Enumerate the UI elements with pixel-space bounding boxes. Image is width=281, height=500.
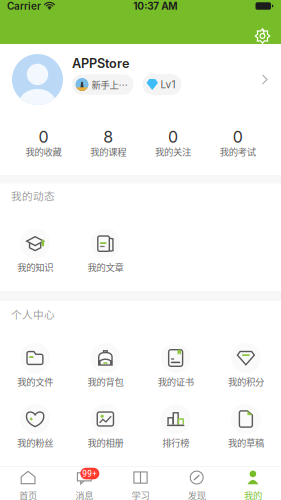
button[interactable]: 首页 — [0, 468, 56, 500]
button[interactable]: 8 — [76, 131, 141, 156]
staticText: 10:37 AM — [133, 0, 177, 12]
button[interactable]: 0 — [11, 131, 76, 156]
staticText: 我的课程 — [90, 145, 126, 158]
staticText: 消息 — [75, 488, 93, 500]
button[interactable]: 排行榜 — [140, 404, 211, 447]
staticText: 我的收藏 — [25, 145, 61, 158]
button[interactable]: APPStore — [0, 44, 281, 115]
button[interactable]: 我的证书 — [140, 343, 211, 386]
button[interactable]: 我的 — [225, 468, 281, 500]
staticText: 首页 — [19, 488, 37, 500]
button[interactable]: 0 — [205, 131, 270, 156]
button[interactable]: 我的知识 — [0, 228, 70, 271]
staticText: 0 — [38, 127, 48, 147]
button[interactable]: 我的草稿 — [211, 404, 281, 447]
staticText: 0 — [233, 127, 243, 147]
button[interactable]: 我的粉丝 — [0, 404, 70, 447]
button[interactable]: Settings — [251, 24, 274, 47]
staticText: 我的背包 — [87, 375, 123, 388]
staticText: 排行榜 — [162, 436, 189, 449]
staticText: 8 — [103, 127, 113, 147]
button[interactable]: 我的积分 — [211, 343, 281, 386]
staticText: 我的考试 — [220, 145, 256, 158]
button[interactable]: 我的文件 — [0, 343, 70, 386]
staticText: 发现 — [188, 488, 206, 500]
staticText: 99+ — [82, 468, 97, 479]
staticText: 我的文件 — [17, 375, 53, 388]
staticText: 0 — [168, 127, 178, 147]
staticText: 我的动态 — [11, 188, 55, 203]
staticText: 我的积分 — [228, 375, 264, 388]
staticText: 我的粉丝 — [17, 436, 53, 449]
button[interactable]: 我的背包 — [70, 343, 140, 386]
staticText: Carrier — [7, 0, 41, 12]
staticText: 个人中心 — [11, 306, 55, 322]
button[interactable]: 99+ — [56, 468, 112, 500]
staticText: 我的草稿 — [228, 436, 264, 449]
staticText: Lv1 — [160, 78, 175, 91]
staticText: 我的相册 — [87, 436, 123, 449]
staticText: 我的文章 — [87, 260, 123, 274]
button[interactable]: 发现 — [169, 468, 225, 500]
staticText: 我的知识 — [17, 260, 53, 274]
staticText: 新手上… — [91, 78, 127, 91]
button[interactable]: 0 — [140, 131, 205, 156]
staticText: 我的 — [244, 488, 262, 500]
staticText: APPStore — [72, 56, 129, 71]
staticText: 学习 — [131, 488, 149, 500]
staticText: 我的证书 — [158, 375, 194, 388]
button[interactable]: 我的相册 — [70, 404, 140, 447]
button[interactable]: 学习 — [112, 468, 169, 500]
button[interactable]: 我的文章 — [70, 228, 140, 271]
staticText: 我的关注 — [155, 145, 191, 158]
